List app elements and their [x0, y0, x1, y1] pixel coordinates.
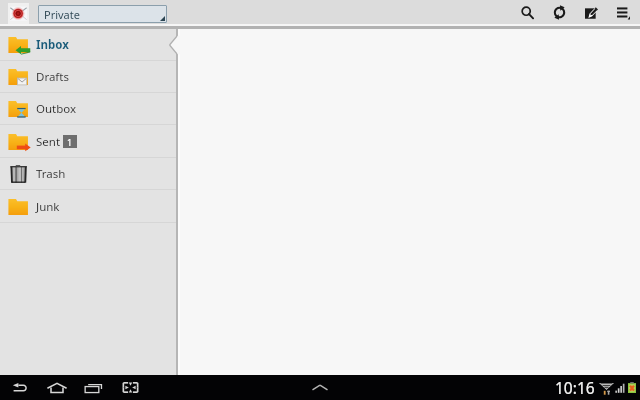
button[interactable]: Compose — [575, 0, 607, 25]
staticText: Sent — [36, 134, 61, 150]
button[interactable]: Back — [1, 375, 38, 400]
staticText: Private — [44, 7, 80, 22]
button[interactable]: App icon — [8, 3, 29, 24]
button[interactable]: Screenshot — [112, 375, 149, 400]
button[interactable]: Outbox — [0, 93, 178, 125]
staticText: Outbox — [36, 101, 77, 117]
button[interactable]: Sent — [0, 125, 178, 158]
button[interactable]: Search — [511, 0, 543, 25]
button[interactable]: Refresh — [543, 0, 575, 25]
button[interactable]: Expand — [306, 375, 334, 400]
staticText: 1 — [67, 136, 73, 148]
staticText: 10:16 — [555, 377, 595, 398]
button[interactable]: Drafts — [0, 61, 178, 93]
staticText: Junk — [36, 199, 60, 215]
staticText: Drafts — [36, 69, 69, 85]
button[interactable]: Private — [38, 5, 167, 23]
button[interactable]: Home — [38, 375, 75, 400]
button[interactable]: Trash — [0, 158, 178, 190]
button[interactable]: Inbox — [0, 29, 178, 61]
staticText: Trash — [36, 166, 66, 182]
button[interactable]: Junk — [0, 190, 178, 223]
button[interactable]: Menu — [607, 0, 639, 25]
button[interactable]: Recent apps — [75, 375, 112, 400]
staticText: Inbox — [36, 37, 69, 53]
